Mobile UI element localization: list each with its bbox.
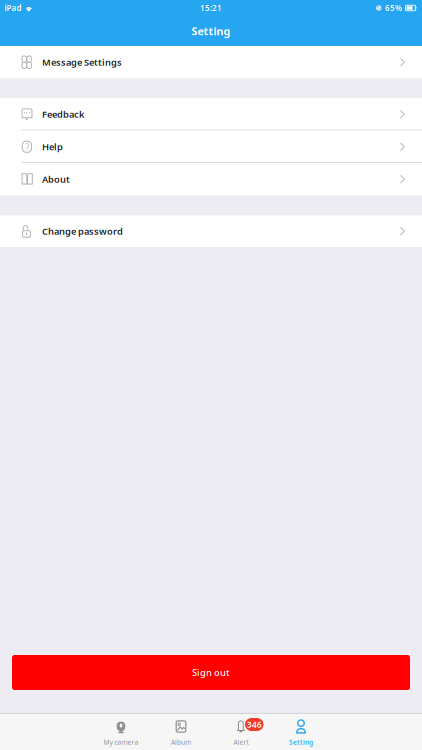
button[interactable]: Setting xyxy=(271,714,331,750)
staticText: Sign out xyxy=(192,666,230,679)
button[interactable]: Sign out xyxy=(12,655,410,690)
staticText: Album xyxy=(171,737,191,747)
button[interactable]: Feedback xyxy=(0,98,422,130)
button[interactable]: About xyxy=(0,163,422,195)
button[interactable]: ? xyxy=(0,130,422,163)
staticText: Change password xyxy=(42,225,123,238)
staticText: Setting xyxy=(191,24,230,38)
staticText: About xyxy=(42,173,70,186)
staticText: 15:21 xyxy=(200,3,222,13)
staticText: Help xyxy=(42,140,63,153)
staticText: 65% xyxy=(385,3,402,13)
button[interactable]: 346 xyxy=(211,714,271,750)
staticText: iPad xyxy=(4,3,21,13)
staticText: 346 xyxy=(247,719,262,730)
button[interactable]: Message Settings xyxy=(0,46,422,78)
button[interactable]: Album xyxy=(151,714,211,750)
button[interactable]: Change password xyxy=(0,215,422,247)
staticText: Alert xyxy=(233,737,248,747)
staticText: Setting xyxy=(289,737,313,747)
staticText: My camera xyxy=(103,737,138,747)
staticText: Message Settings xyxy=(42,56,122,69)
button[interactable]: My camera xyxy=(91,714,151,750)
staticText: ? xyxy=(25,140,29,153)
staticText: Feedback xyxy=(42,108,84,121)
